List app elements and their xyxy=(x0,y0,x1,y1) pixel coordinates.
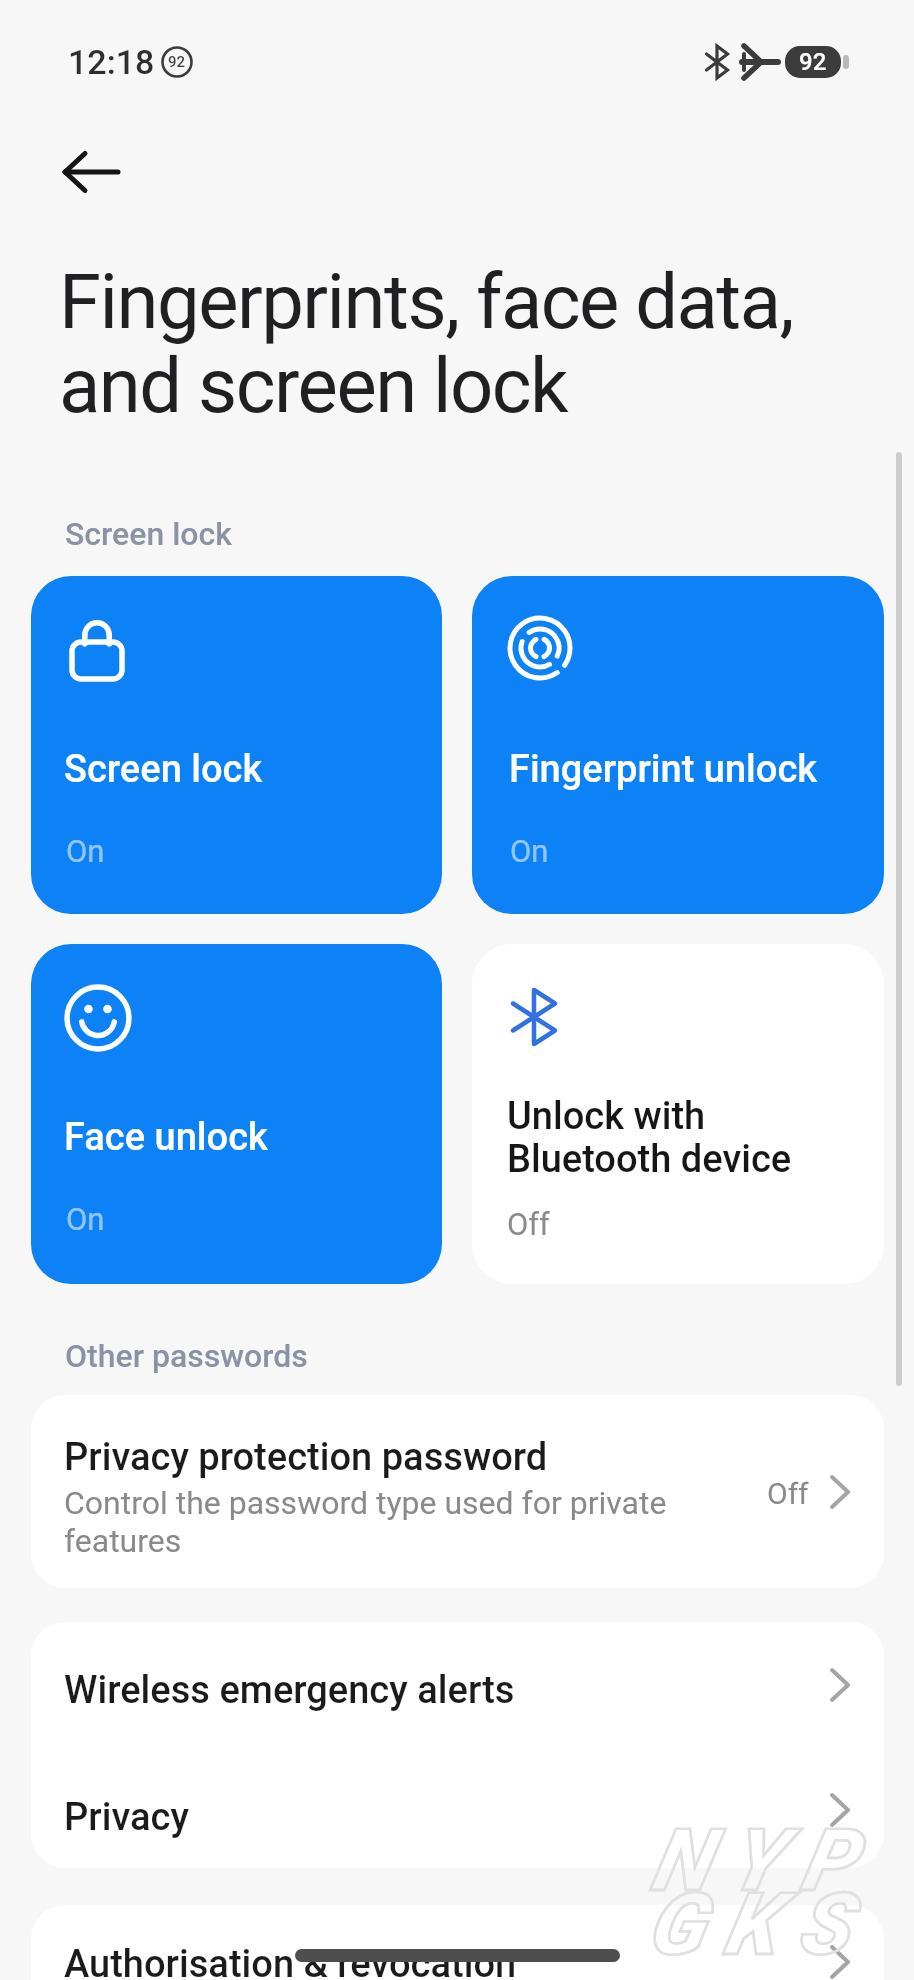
staticText: Privacy xyxy=(64,1795,189,1840)
staticText: Control the password type used for priva… xyxy=(64,1484,667,1522)
staticText: features xyxy=(64,1522,182,1560)
staticText: On xyxy=(66,1201,105,1237)
button[interactable] xyxy=(45,138,140,208)
staticText: and screen lock xyxy=(59,341,568,430)
button[interactable] xyxy=(472,576,884,914)
staticText: Bluetooth device xyxy=(507,1137,792,1182)
button[interactable] xyxy=(31,576,442,914)
staticText: Off xyxy=(767,1476,809,1511)
staticText: Face unlock xyxy=(64,1115,268,1160)
staticText: 12:18 xyxy=(68,42,155,82)
staticText: Other passwords xyxy=(65,1337,308,1375)
staticText: Wireless emergency alerts xyxy=(64,1668,515,1713)
staticText: Privacy protection password xyxy=(64,1435,548,1480)
button[interactable] xyxy=(472,944,884,1284)
staticText: NYP xyxy=(650,1810,875,1911)
staticText: GKS xyxy=(646,1874,869,1975)
staticText: 92 xyxy=(799,48,827,76)
button[interactable] xyxy=(31,1905,884,1980)
staticText: On xyxy=(66,833,105,869)
button[interactable] xyxy=(31,1395,884,1588)
staticText: On xyxy=(510,833,549,869)
button[interactable] xyxy=(31,1622,884,1745)
staticText: Screen lock xyxy=(65,515,233,553)
button[interactable] xyxy=(31,944,442,1284)
staticText: Fingerprints, face data, xyxy=(59,257,794,346)
staticText: Fingerprint unlock xyxy=(509,747,818,792)
staticText: Off xyxy=(507,1206,550,1242)
staticText: Screen lock xyxy=(64,747,263,792)
staticText: Unlock with xyxy=(507,1094,706,1139)
staticText: Authorisation & revocation xyxy=(64,1942,517,1980)
button[interactable] xyxy=(31,1745,884,1868)
staticText: 92 xyxy=(168,53,186,71)
